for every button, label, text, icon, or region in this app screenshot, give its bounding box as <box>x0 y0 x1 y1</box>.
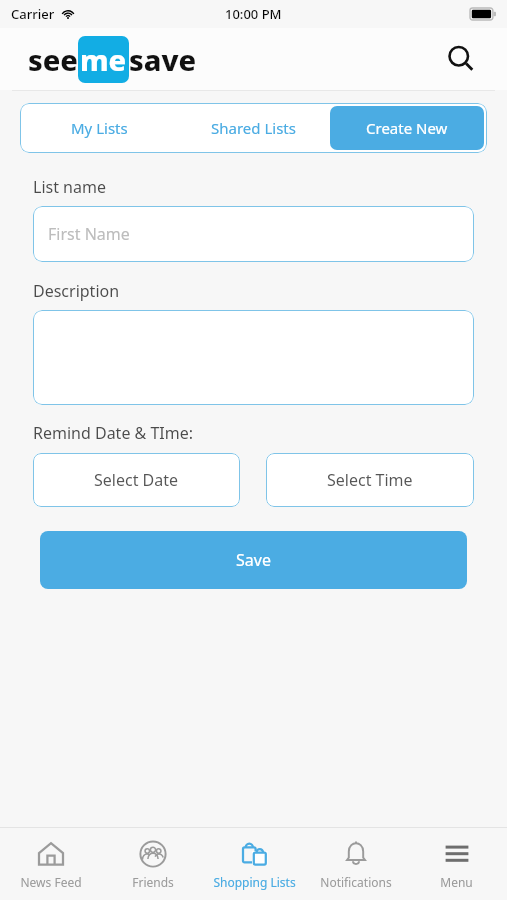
button[interactable]: Shopping Lists <box>204 828 305 900</box>
staticText: Create New <box>366 118 448 138</box>
staticText: Shopping Lists <box>213 874 296 890</box>
button[interactable]: Select Date <box>33 453 240 507</box>
button[interactable]: Shared Lists <box>176 106 330 150</box>
button[interactable]: Save <box>40 531 467 589</box>
staticText: Select Time <box>327 469 413 491</box>
staticText: List name <box>33 176 106 198</box>
staticText: Save <box>236 549 271 571</box>
staticText: Menu <box>440 874 473 890</box>
staticText: Carrier <box>11 5 55 23</box>
button[interactable]: Search <box>441 39 481 79</box>
button[interactable]: First Name <box>33 206 474 262</box>
staticText: me <box>80 40 127 79</box>
button[interactable]: Create New <box>330 106 484 150</box>
staticText: 10:00 PM <box>225 5 282 23</box>
button[interactable]: Notifications <box>305 828 406 900</box>
button[interactable] <box>33 310 474 405</box>
staticText: see <box>28 40 78 79</box>
staticText: Remind Date & TIme: <box>33 422 194 444</box>
button[interactable]: News Feed <box>0 828 102 900</box>
staticText: save <box>129 40 197 79</box>
staticText: Notifications <box>320 874 392 890</box>
staticText: First Name <box>48 223 130 245</box>
staticText: My Lists <box>71 118 128 138</box>
button[interactable]: Menu <box>406 828 507 900</box>
staticText: News Feed <box>20 874 82 890</box>
button[interactable]: My Lists <box>23 106 176 150</box>
button[interactable]: Select Time <box>266 453 474 507</box>
button[interactable]: Friends <box>102 828 204 900</box>
staticText: Friends <box>132 874 174 890</box>
staticText: Description <box>33 280 120 302</box>
staticText: Select Date <box>94 469 179 491</box>
staticText: Shared Lists <box>211 118 296 138</box>
